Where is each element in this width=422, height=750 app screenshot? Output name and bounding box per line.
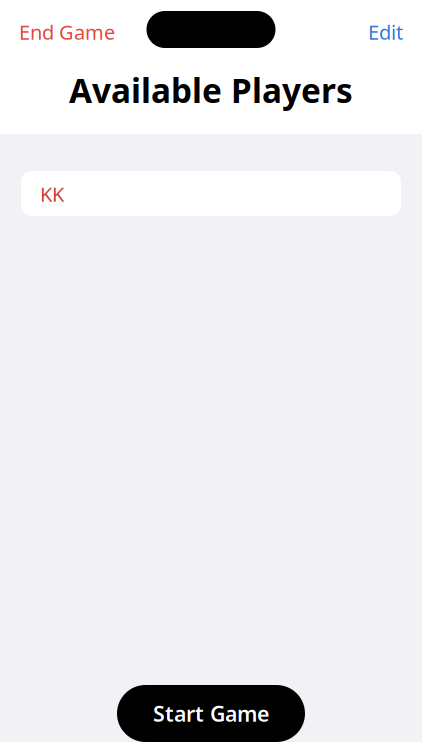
button[interactable]: KK	[21, 171, 401, 216]
staticText: Start Game	[153, 699, 269, 728]
button[interactable]: Edit	[368, 19, 403, 45]
button[interactable]: Start Game	[117, 685, 305, 742]
staticText: End Game	[19, 19, 115, 45]
staticText: Available Players	[69, 68, 353, 112]
staticText: KK	[40, 181, 64, 207]
staticText: Edit	[368, 19, 403, 45]
button[interactable]: End Game	[19, 19, 115, 45]
